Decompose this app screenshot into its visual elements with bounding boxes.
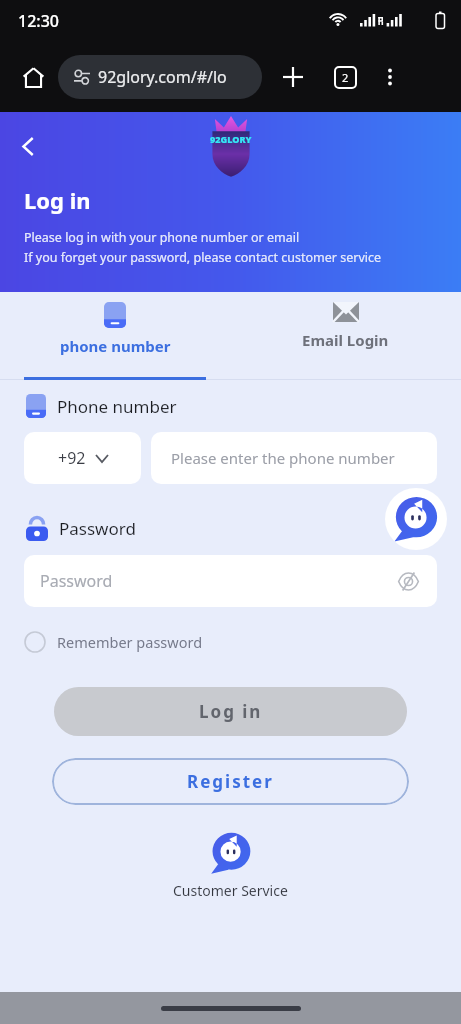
staticText: Password — [40, 570, 113, 592]
button[interactable]: Show password — [395, 568, 421, 594]
staticText: Register — [187, 770, 274, 793]
staticText: phone number — [60, 336, 171, 356]
button[interactable]: Log in — [54, 687, 407, 736]
button[interactable]: Chat support — [385, 488, 447, 550]
staticText: Please log in with your phone number or … — [24, 229, 300, 246]
staticText: Customer Service — [173, 881, 288, 900]
button[interactable]: Tabs — [328, 60, 362, 94]
staticText: Password — [59, 517, 136, 540]
button[interactable]: Remember password — [24, 629, 203, 655]
button[interactable]: phone number — [0, 292, 230, 380]
button[interactable]: Register — [52, 758, 409, 805]
staticText: Log in — [199, 700, 263, 723]
staticText: 92glory.com/#/lo — [98, 66, 227, 88]
button[interactable]: Back — [10, 128, 46, 164]
staticText: 12:30 — [18, 10, 59, 32]
staticText: 92GLORY — [210, 133, 252, 145]
button[interactable]: 92glory.com/#/lo — [58, 55, 262, 99]
button[interactable]: Please enter the phone number — [151, 432, 437, 484]
staticText: 2 — [342, 70, 349, 85]
staticText: Log in — [24, 185, 91, 215]
button[interactable]: +92 — [24, 432, 141, 484]
staticText: Please enter the phone number — [171, 448, 395, 468]
button[interactable]: Email Login — [230, 292, 461, 380]
button[interactable]: Home — [14, 58, 52, 96]
staticText: If you forget your password, please cont… — [24, 249, 382, 266]
button[interactable]: More options — [374, 61, 406, 93]
staticText: Remember password — [57, 632, 203, 652]
staticText: +92 — [58, 447, 86, 469]
button[interactable]: Customer Service — [0, 831, 461, 900]
button[interactable]: New tab — [276, 60, 310, 94]
button[interactable]: Password — [24, 555, 437, 607]
staticText: Phone number — [57, 395, 177, 418]
staticText: Email Login — [302, 330, 389, 350]
